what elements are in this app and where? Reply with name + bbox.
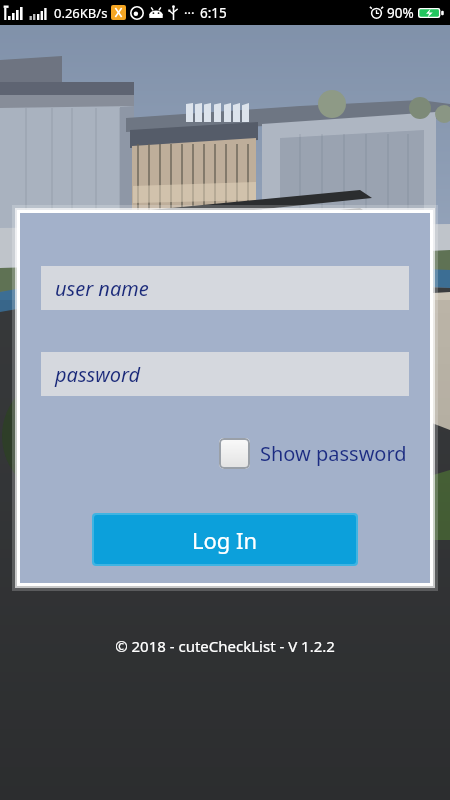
button[interactable]: password [41, 352, 409, 396]
button[interactable]: Show password [219, 438, 407, 469]
staticText: password [55, 361, 141, 388]
staticText: ··· [184, 4, 195, 22]
staticText: © 2018 - cuteCheckList - V 1.2.2 [115, 636, 335, 656]
staticText: Show password [260, 440, 407, 467]
staticText: 0.26KB/s [54, 4, 108, 22]
button[interactable]: Log In [94, 515, 356, 564]
button[interactable]: user name [41, 266, 409, 310]
staticText: Log In [192, 525, 258, 555]
staticText: 90% [387, 4, 414, 22]
staticText: user name [55, 275, 149, 302]
staticText: 6:15 [200, 4, 227, 22]
